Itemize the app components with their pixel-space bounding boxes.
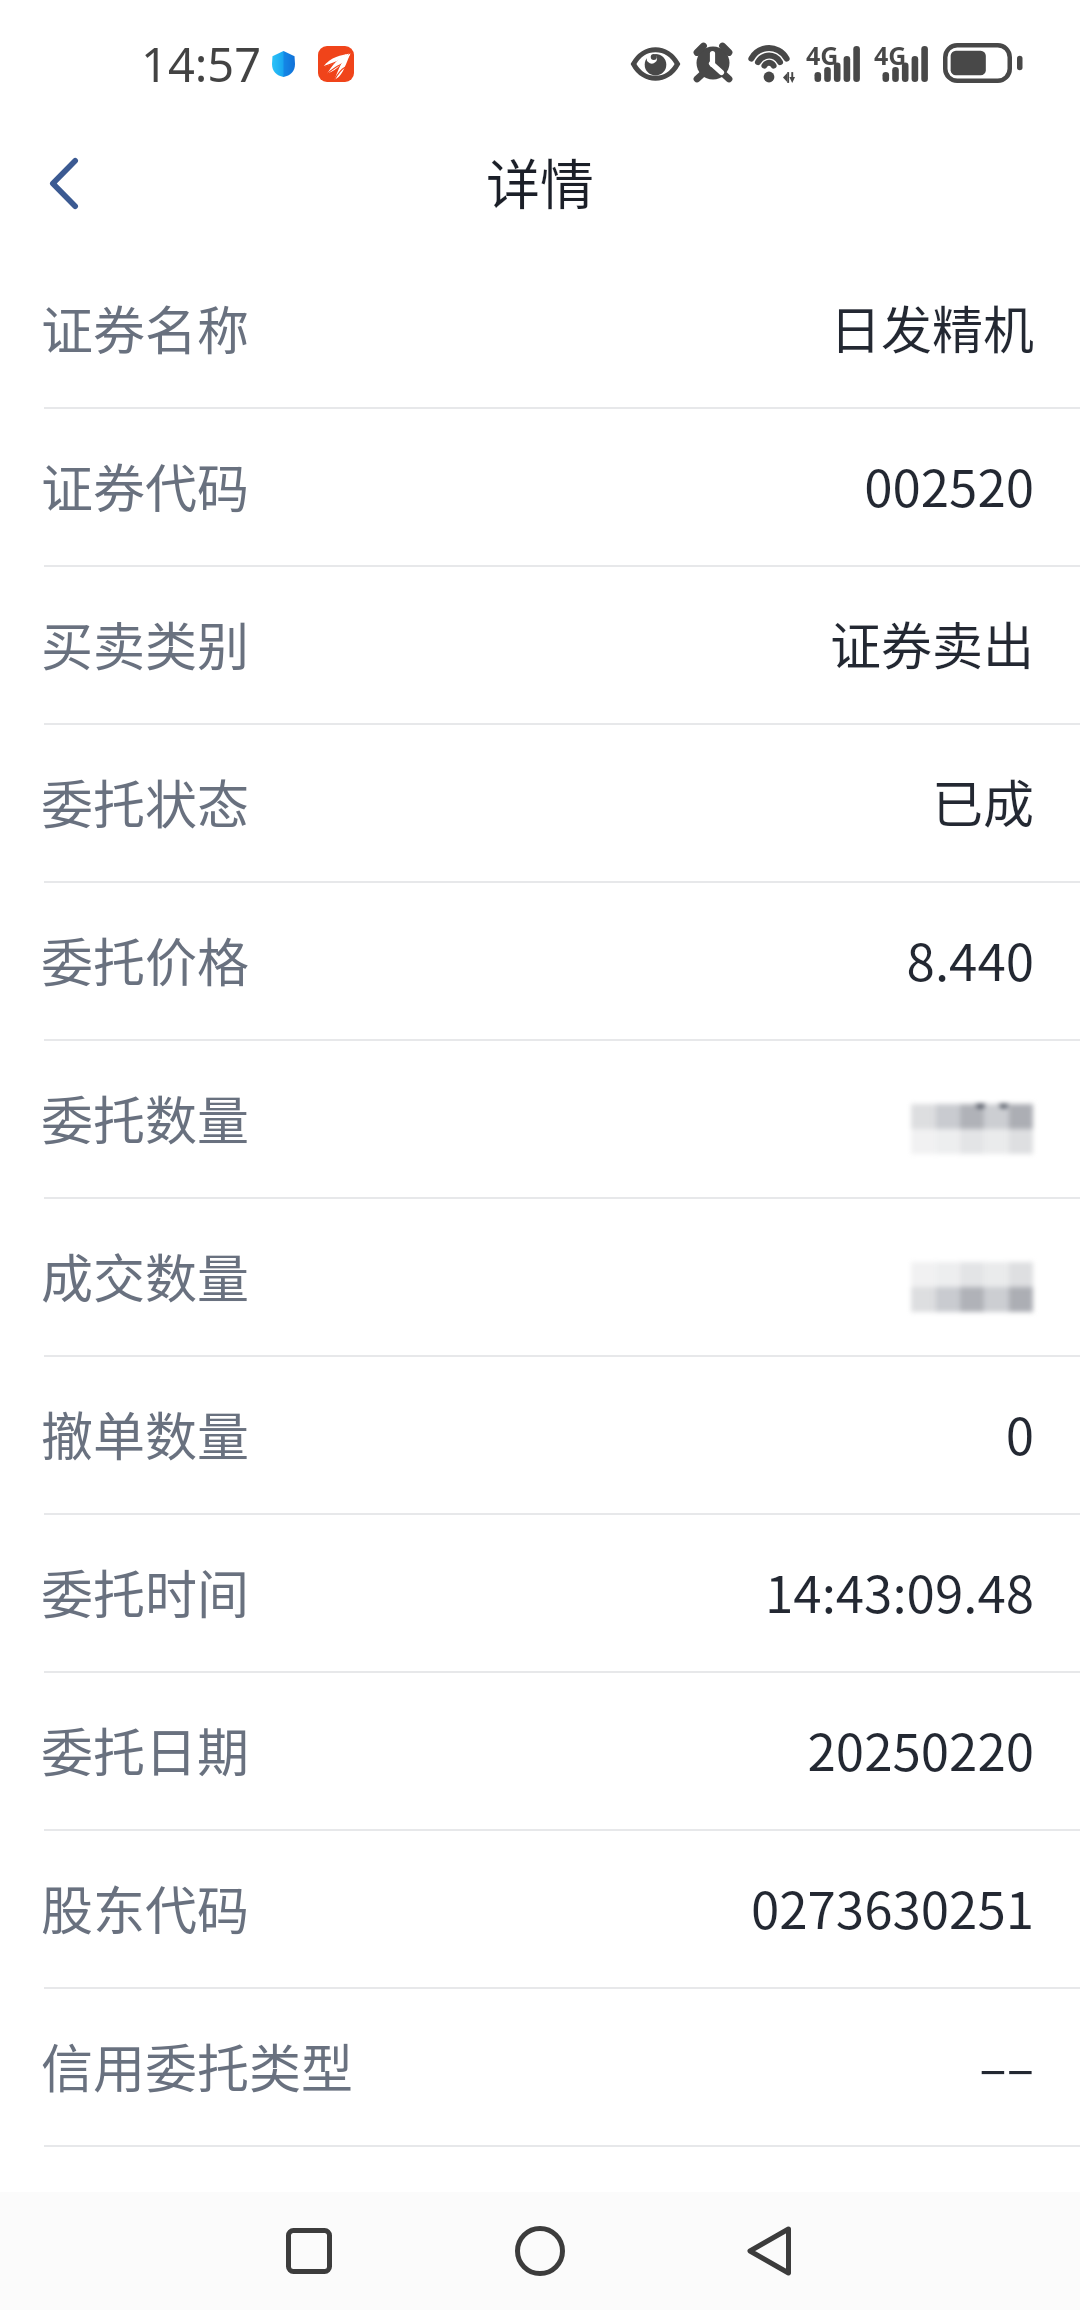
staticText: 20250220 <box>807 1712 1034 1786</box>
button[interactable]: 股东代码 <box>0 1831 1080 1989</box>
staticText: 成交数量 <box>41 1238 250 1313</box>
staticText: 4G <box>874 38 907 72</box>
staticText: 002520 <box>864 448 1034 522</box>
button[interactable]: 证券名称 <box>0 251 1080 409</box>
staticText: 14:57 <box>141 32 262 96</box>
button[interactable]: Recents <box>249 2192 369 2310</box>
button[interactable]: 委托日期 <box>0 1673 1080 1831</box>
button[interactable]: 信用委托类型 <box>0 1989 1080 2147</box>
staticText: 4G <box>806 38 839 72</box>
staticText: 委托数量 <box>41 1080 250 1155</box>
staticText: 委托时间 <box>41 1554 250 1629</box>
button[interactable]: 委托时间 <box>0 1515 1080 1673</box>
staticText: 撤单数量 <box>41 1396 250 1471</box>
staticText: 日发精机 <box>829 290 1034 364</box>
staticText: 股东代码 <box>41 1870 250 1945</box>
button[interactable]: 证券代码 <box>0 409 1080 567</box>
button[interactable]: 委托价格 <box>0 883 1080 1041</box>
staticText: 已成 <box>931 764 1034 838</box>
staticText: 信用委托类型 <box>41 2028 354 2103</box>
button[interactable]: Back <box>709 2192 829 2310</box>
staticText: 详情 <box>486 142 594 220</box>
staticText: 8.440 <box>906 922 1034 996</box>
staticText: –– <box>979 2028 1034 2102</box>
button[interactable]: 撤单数量 <box>0 1357 1080 1515</box>
staticText: 0 <box>1005 1396 1034 1470</box>
staticText: 0273630251 <box>750 1870 1034 1944</box>
staticText: 委托价格 <box>41 922 250 997</box>
button[interactable]: 成交数量 <box>0 1199 1080 1357</box>
staticText: 证券代码 <box>41 448 250 523</box>
button[interactable]: 买卖类别 <box>0 567 1080 725</box>
button[interactable]: Back <box>2 121 126 245</box>
staticText: 14:43:09.48 <box>765 1554 1034 1628</box>
staticText: 证券卖出 <box>829 606 1034 680</box>
staticText: 委托状态 <box>41 764 250 839</box>
button[interactable]: 委托状态 <box>0 725 1080 883</box>
button[interactable]: 委托数量 <box>0 1041 1080 1199</box>
button[interactable]: Home <box>480 2192 600 2310</box>
staticText: 买卖类别 <box>41 606 250 681</box>
staticText: 委托日期 <box>41 1712 250 1787</box>
staticText: 证券名称 <box>41 290 250 365</box>
